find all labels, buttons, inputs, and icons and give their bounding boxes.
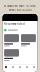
button[interactable]: [4, 34, 19, 48]
button[interactable]: Profile: [30, 66, 37, 70]
button[interactable]: Browse: [9, 66, 16, 70]
staticText: A SMARTER WAY TO FIND: [4, 4, 36, 8]
button[interactable]: Cart: [23, 66, 30, 70]
staticText: WHAT YOU'LL LOVE: [8, 8, 31, 12]
staticText: Recommended: [4, 22, 25, 26]
button[interactable]: [21, 34, 36, 48]
button[interactable]: [4, 49, 19, 61]
button[interactable]: Home: [2, 66, 9, 70]
button[interactable]: Saved: [16, 66, 23, 70]
